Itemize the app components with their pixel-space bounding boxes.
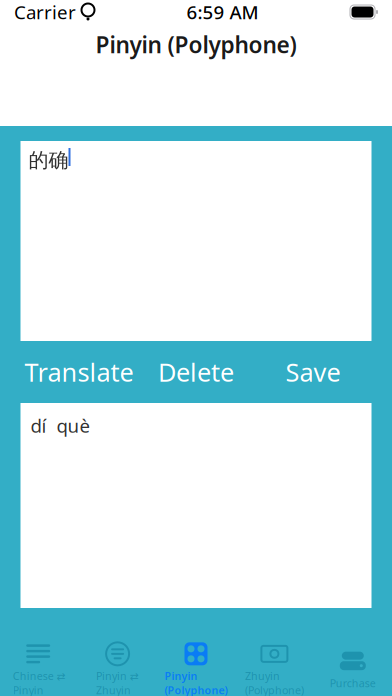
staticText: Chinese ⇄ Pinyin bbox=[13, 669, 66, 696]
staticText: Translate bbox=[24, 355, 133, 389]
staticText: Pinyin (Polyphone) bbox=[164, 669, 227, 696]
button[interactable]: Delete bbox=[137, 341, 254, 403]
button[interactable]: Pinyin (Polyphone) bbox=[157, 643, 235, 696]
staticText: Carrier bbox=[14, 0, 76, 24]
staticText: Save bbox=[285, 355, 340, 389]
staticText: Pinyin (Polyphone) bbox=[95, 29, 296, 59]
staticText: Zhuyin (Polyphone) bbox=[245, 669, 304, 696]
button[interactable]: Translate bbox=[20, 341, 137, 403]
button[interactable]: Pinyin ⇄ Zhuyin bbox=[78, 643, 157, 696]
button[interactable]: Zhuyin (Polyphone) bbox=[235, 643, 314, 696]
staticText: dí què bbox=[30, 413, 90, 438]
button[interactable]: Chinese ⇄ Pinyin bbox=[0, 643, 78, 696]
button[interactable]: Save bbox=[254, 341, 371, 403]
staticText: Pinyin ⇄ Zhuyin bbox=[96, 669, 139, 696]
staticText: 6:59 AM bbox=[186, 0, 258, 24]
staticText: 的确 bbox=[28, 148, 68, 173]
button[interactable]: Purchase bbox=[314, 643, 392, 696]
staticText: Purchase bbox=[330, 676, 376, 690]
staticText: Delete bbox=[158, 355, 234, 389]
